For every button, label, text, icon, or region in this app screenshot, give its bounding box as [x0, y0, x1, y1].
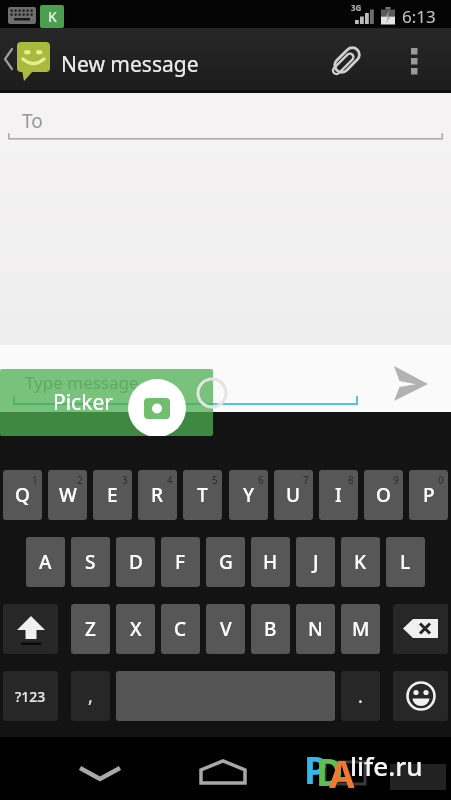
staticText: B	[264, 616, 277, 642]
staticText: T	[197, 482, 208, 508]
staticText: 6	[258, 473, 264, 487]
button[interactable]	[193, 752, 253, 787]
staticText: K	[48, 7, 57, 26]
staticText: Picker	[53, 388, 113, 417]
staticText: A	[329, 748, 355, 798]
button[interactable]	[393, 604, 448, 654]
staticText: P	[304, 744, 327, 794]
staticText: 6:13	[402, 5, 436, 28]
button[interactable]: Y	[229, 470, 268, 520]
button[interactable]	[325, 40, 367, 82]
button[interactable]: U	[274, 470, 313, 520]
staticText: Type message	[25, 371, 139, 394]
button[interactable]: G	[206, 537, 245, 587]
button[interactable]: N	[296, 604, 335, 654]
button[interactable]	[385, 361, 435, 406]
staticText: U	[286, 482, 301, 508]
staticText: G	[219, 549, 233, 575]
button[interactable]: .	[341, 671, 380, 721]
button[interactable]: B	[251, 604, 290, 654]
staticText: C	[174, 616, 187, 642]
staticText: 7	[303, 473, 309, 487]
button[interactable]: P	[409, 470, 448, 520]
staticText: D	[316, 746, 344, 796]
button[interactable]: Q	[3, 470, 42, 520]
button[interactable]: A	[26, 537, 65, 587]
staticText: F	[175, 549, 186, 575]
staticText: 2	[77, 473, 83, 487]
staticText: ?123	[15, 687, 46, 706]
button[interactable]: Picker	[0, 369, 213, 436]
button[interactable]: E	[93, 470, 132, 520]
staticText: E	[107, 482, 118, 508]
button[interactable]	[70, 755, 130, 785]
staticText: Y	[243, 482, 255, 508]
staticText: X	[130, 616, 142, 642]
staticText: 4	[167, 473, 173, 487]
staticText: 3	[122, 473, 128, 487]
button[interactable]: W	[48, 470, 87, 520]
staticText: 1	[32, 473, 38, 487]
staticText: A	[39, 549, 52, 575]
staticText: life.ru	[350, 748, 423, 783]
button[interactable]	[400, 40, 432, 82]
button[interactable]: C	[161, 604, 200, 654]
button[interactable]: F	[161, 537, 200, 587]
button[interactable]: V	[206, 604, 245, 654]
button[interactable]	[17, 42, 51, 82]
staticText: M	[352, 616, 370, 642]
button[interactable]: H	[251, 537, 290, 587]
button[interactable]: Z	[71, 604, 110, 654]
button[interactable]: L	[386, 537, 425, 587]
staticText: R	[151, 482, 164, 508]
button[interactable]: T	[183, 470, 222, 520]
staticText: New message	[61, 50, 199, 79]
staticText: To	[22, 108, 43, 134]
staticText: 5	[212, 473, 218, 487]
staticText: S	[85, 549, 96, 575]
button[interactable]: S	[71, 537, 110, 587]
button[interactable]: O	[364, 470, 403, 520]
button[interactable]: K	[341, 537, 380, 587]
staticText: .	[358, 684, 363, 709]
staticText: N	[308, 616, 323, 642]
staticText: L	[400, 549, 411, 575]
staticText: V	[220, 616, 232, 642]
staticText: Q	[15, 482, 30, 508]
button[interactable]: ?123	[3, 671, 58, 721]
staticText: I	[335, 482, 342, 508]
staticText: 8	[348, 473, 354, 487]
staticText: W	[59, 482, 77, 508]
button[interactable]: ,	[71, 671, 110, 721]
button[interactable]: J	[296, 537, 335, 587]
button[interactable]	[3, 604, 58, 654]
staticText: K	[354, 549, 367, 575]
staticText: Z	[85, 616, 96, 642]
staticText: P	[423, 482, 435, 508]
button[interactable]: R	[138, 470, 177, 520]
button[interactable]	[393, 671, 448, 721]
button[interactable]: I	[319, 470, 358, 520]
button[interactable]: To	[0, 93, 451, 148]
button[interactable]: X	[116, 604, 155, 654]
staticText: J	[313, 549, 319, 575]
staticText: O	[376, 482, 391, 508]
staticText: D	[129, 549, 143, 575]
staticText: H	[263, 549, 278, 575]
staticText: 3G	[351, 2, 362, 13]
staticText: ,	[88, 684, 93, 709]
button[interactable]: D	[116, 537, 155, 587]
staticText: 0	[438, 473, 444, 487]
button[interactable]: M	[341, 604, 380, 654]
staticText: 9	[393, 473, 399, 487]
